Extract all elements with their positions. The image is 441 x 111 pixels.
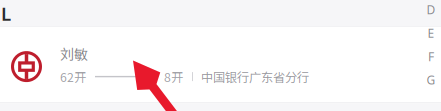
staticText: F xyxy=(428,48,434,64)
staticText: 刘敏 xyxy=(60,43,88,64)
staticText: 8开 xyxy=(164,68,183,85)
staticText: G xyxy=(426,72,435,88)
button[interactable]: Section index xyxy=(422,0,440,109)
button[interactable]: 刘敏 xyxy=(0,27,441,103)
staticText: 中国银行广东省分行 xyxy=(201,68,309,85)
staticText: D xyxy=(426,2,435,18)
staticText: E xyxy=(427,25,434,41)
staticText: 62开 xyxy=(60,68,86,85)
staticText: L xyxy=(1,1,11,26)
